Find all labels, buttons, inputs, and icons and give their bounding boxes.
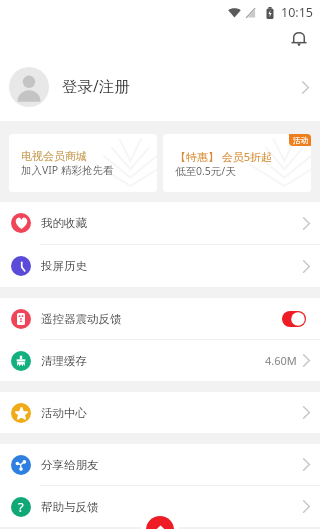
staticText: 低至0.5元/天 (175, 164, 236, 178)
button[interactable]: ? (0, 486, 320, 527)
button[interactable]: 清理缓存 (0, 340, 320, 381)
staticText: 4.60M (265, 353, 297, 368)
button[interactable]: 活动中心 (0, 392, 320, 433)
staticText: 加入VIP 精彩抢先看 (21, 163, 114, 177)
button[interactable]: 分享给朋友 (0, 444, 320, 485)
staticText: 我的收藏 (41, 216, 87, 230)
staticText: 10:15 (281, 4, 313, 21)
staticText: 登录/注册 (62, 75, 130, 96)
button[interactable]: 遥控器震动反馈 (0, 298, 320, 339)
staticText: 帮助与反馈 (41, 500, 99, 514)
staticText: 清理缓存 (41, 354, 87, 368)
staticText: 活动中心 (41, 406, 87, 420)
button[interactable]: 电视会员商城 (9, 134, 157, 192)
button[interactable]: 我的收藏 (0, 202, 320, 244)
staticText: 活动 (293, 136, 308, 145)
button[interactable]: Scroll to top (146, 516, 174, 529)
button[interactable]: Remote vibration feedback (282, 311, 306, 327)
staticText: 分享给朋友 (41, 458, 99, 472)
staticText: 遥控器震动反馈 (41, 312, 122, 326)
button[interactable]: Notifications (287, 27, 311, 51)
staticText: ? (18, 498, 24, 516)
button[interactable]: 投屏历史 (0, 245, 320, 287)
staticText: 电视会员商城 (21, 149, 87, 163)
staticText: 投屏历史 (41, 259, 87, 273)
button[interactable]: 登录/注册 (0, 53, 320, 121)
button[interactable]: 【特惠】 会员5折起 (163, 134, 311, 192)
staticText: 【特惠】 会员5折起 (175, 149, 273, 164)
